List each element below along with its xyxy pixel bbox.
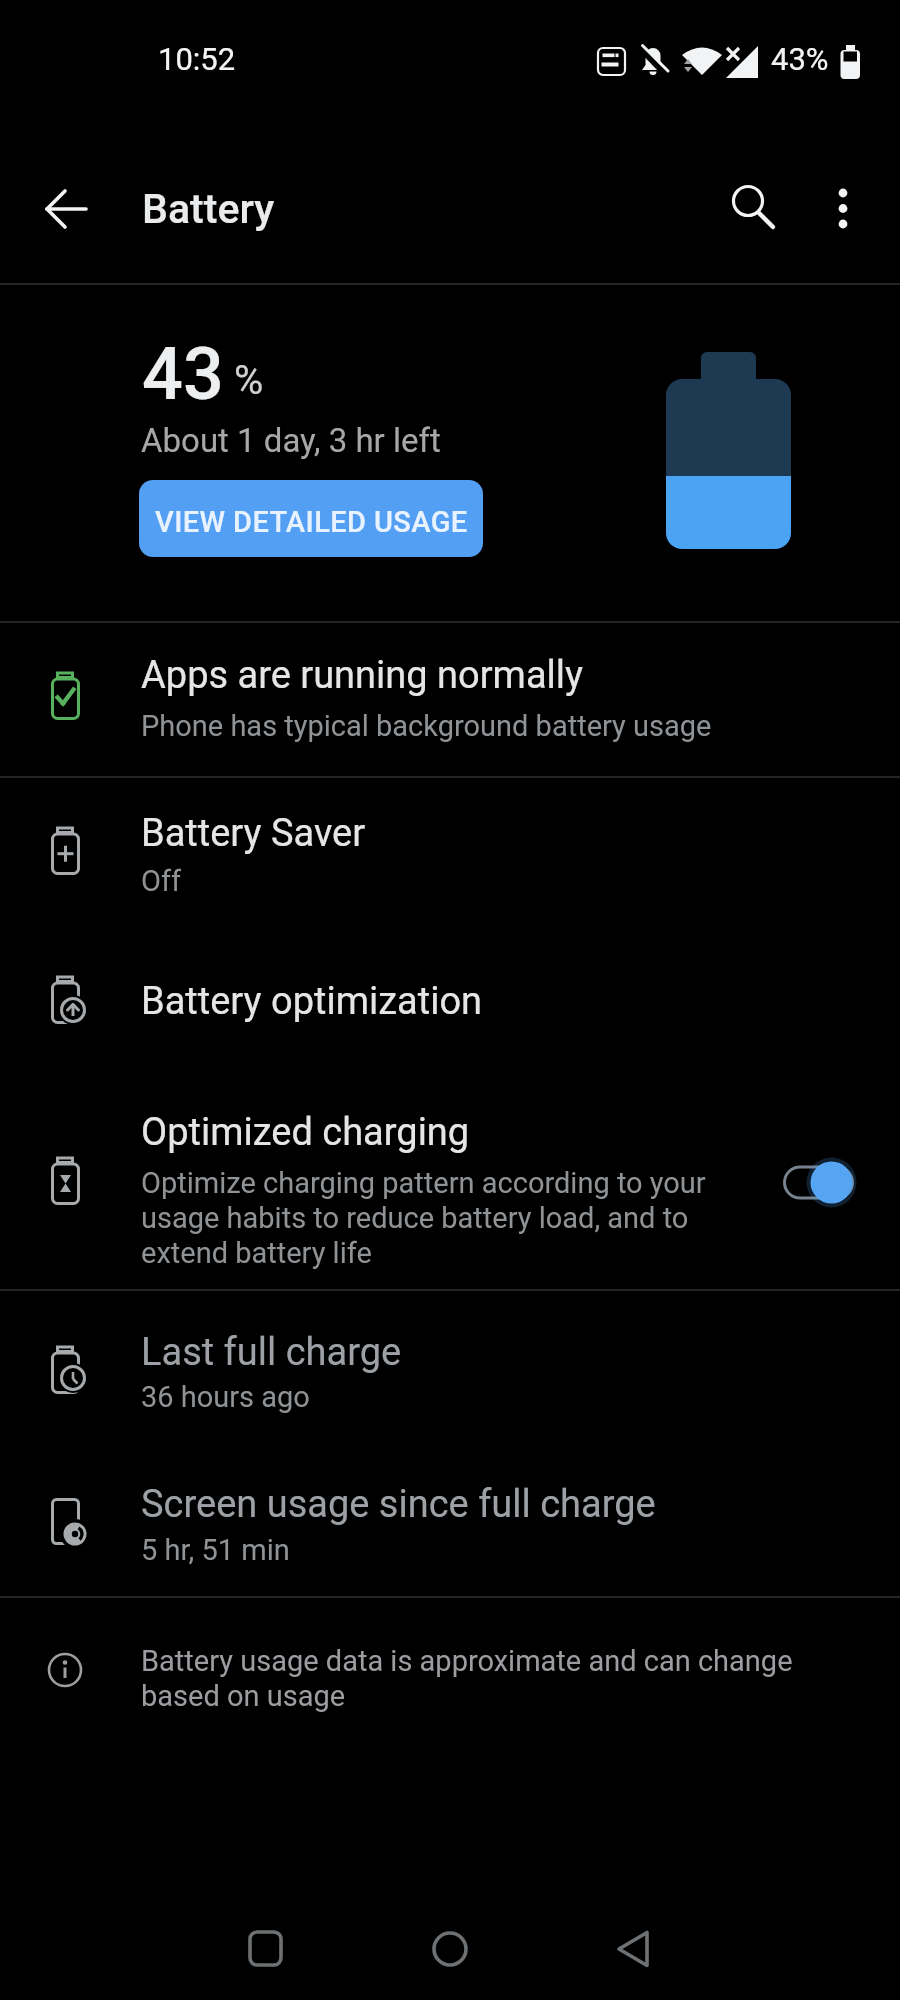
staticText: Optimize charging pattern according to y… xyxy=(141,1166,706,1270)
button[interactable]: Battery Saver xyxy=(0,778,900,928)
staticText: Screen usage since full charge xyxy=(141,1482,656,1527)
staticText: VIEW DETAILED USAGE xyxy=(155,505,468,539)
button[interactable] xyxy=(770,1156,865,1208)
staticText: Apps are running normally xyxy=(141,653,584,698)
staticText: Optimized charging xyxy=(141,1110,470,1155)
staticText: 43% xyxy=(771,41,829,77)
button[interactable]: Optimized charging xyxy=(0,1071,900,1289)
button[interactable] xyxy=(718,175,784,241)
staticText: 10:52 xyxy=(158,41,236,77)
button[interactable] xyxy=(420,1920,480,1980)
staticText: Battery Saver xyxy=(141,811,366,856)
staticText: 36 hours ago xyxy=(141,1380,310,1414)
button[interactable] xyxy=(220,1920,280,1980)
staticText: Last full charge xyxy=(141,1330,402,1375)
staticText: Battery usage data is approximate and ca… xyxy=(141,1644,793,1713)
staticText: Battery optimization xyxy=(141,979,483,1024)
button[interactable] xyxy=(605,1920,665,1980)
button[interactable]: VIEW DETAILED USAGE xyxy=(139,480,483,557)
staticText: 43 xyxy=(142,332,224,416)
staticText: 5 hr, 51 min xyxy=(141,1533,290,1567)
button[interactable]: Last full charge xyxy=(0,1291,900,1448)
button[interactable]: Screen usage since full charge xyxy=(0,1448,900,1596)
staticText: About 1 day, 3 hr left xyxy=(141,421,441,460)
button[interactable] xyxy=(818,180,868,240)
button[interactable]: Battery optimization xyxy=(0,928,900,1071)
staticText: % xyxy=(234,357,264,404)
staticText: Off xyxy=(141,864,182,898)
staticText: Phone has typical background battery usa… xyxy=(141,709,712,743)
button[interactable]: Apps are running normally xyxy=(0,623,900,776)
button[interactable] xyxy=(30,179,90,239)
staticText: Battery xyxy=(142,185,275,233)
